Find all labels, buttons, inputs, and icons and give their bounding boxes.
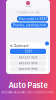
staticText: Auto Paste <box>8 81 47 90</box>
button[interactable]: Recent item <box>10 55 46 60</box>
button[interactable]: Recent item <box>10 61 46 66</box>
staticText: Recent item <box>19 56 37 59</box>
staticText: Thanks, pasting now <box>12 23 46 27</box>
staticText: Your code is 8291 <box>18 17 46 21</box>
staticText: 8291 <box>24 49 31 53</box>
button[interactable]: 8291 <box>10 49 46 54</box>
staticText: Clipboard <box>13 44 28 48</box>
staticText: automatically paste your copied code <box>1 91 54 94</box>
button[interactable]: Close <box>45 41 49 45</box>
button[interactable]: Recent item <box>10 67 46 71</box>
staticText: Recent item <box>19 67 37 71</box>
staticText: Recent item <box>19 62 37 65</box>
staticText: Today 10:24 AM <box>17 11 39 14</box>
staticText: Alex <box>25 5 30 8</box>
